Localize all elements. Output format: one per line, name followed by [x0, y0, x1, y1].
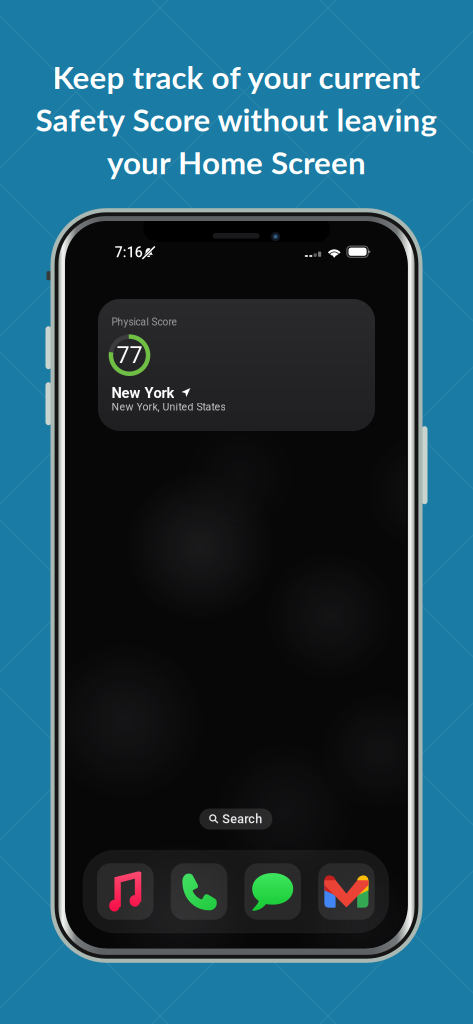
staticText: 7:16	[115, 244, 143, 261]
button[interactable]: Search	[199, 808, 272, 829]
staticText: 77	[116, 341, 142, 369]
button[interactable]: Music	[97, 863, 153, 920]
staticText: New York, United States	[111, 401, 225, 413]
staticText: Keep track of your current	[52, 58, 420, 96]
button[interactable]: Gmail	[318, 863, 375, 920]
staticText: your Home Screen	[107, 143, 366, 181]
staticText: Search	[222, 812, 262, 826]
staticText: Physical Score	[111, 316, 176, 328]
staticText: Safety Score without leaving	[35, 101, 437, 138]
button[interactable]: Messages	[244, 863, 301, 920]
staticText: New York	[111, 384, 174, 402]
button[interactable]: Phone	[171, 863, 227, 920]
